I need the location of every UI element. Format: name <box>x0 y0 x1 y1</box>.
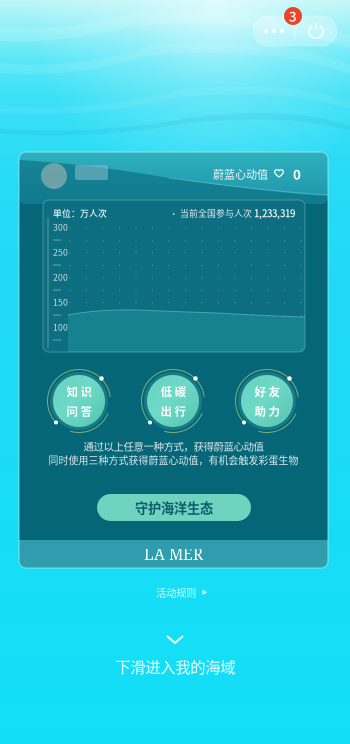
staticText: 好 <box>254 383 265 399</box>
staticText: 300 <box>53 221 68 233</box>
staticText: 150 <box>53 296 68 308</box>
button[interactable]: More and close <box>253 16 337 46</box>
staticText: 100 <box>53 321 68 333</box>
staticText: 同时使用三种方式获得蔚蓝心动值，有机会触发彩蛋生物 <box>48 453 298 467</box>
staticText: 单位：万人次 <box>53 207 107 219</box>
staticText: 0 <box>293 164 301 184</box>
button[interactable]: 低 <box>138 366 208 436</box>
button[interactable]: 守护海洋生态 <box>97 494 251 521</box>
staticText: 友 <box>268 383 279 399</box>
button[interactable]: 活动规则 <box>142 578 222 607</box>
staticText: LA MER <box>144 544 203 564</box>
staticText: 250 <box>53 246 68 258</box>
staticText: 答 <box>80 402 91 419</box>
staticText: 守护海洋生态 <box>135 498 213 517</box>
button[interactable]: 知 <box>44 366 114 436</box>
staticText: 低 <box>160 383 171 399</box>
staticText: 蔚蓝心动值 <box>213 166 268 182</box>
button[interactable]: 好 <box>232 366 302 436</box>
staticText: 知 <box>66 383 77 399</box>
staticText: 出 <box>160 402 171 419</box>
staticText: • <box>169 206 178 220</box>
staticText: 200 <box>53 271 68 283</box>
staticText: 通过以上任意一种方式，获得蔚蓝心动值 <box>83 438 263 454</box>
staticText: 1,233,319 <box>254 206 295 220</box>
staticText: 问 <box>66 402 77 419</box>
staticText: 力 <box>268 402 279 419</box>
staticText: 当前全国参与人次 <box>178 207 254 219</box>
staticText: 助 <box>254 402 265 419</box>
staticText: 行 <box>174 402 185 419</box>
staticText: 下滑进入我的海域 <box>115 655 235 677</box>
staticText: 3 <box>289 6 297 26</box>
staticText: 活动规则 <box>156 585 196 600</box>
staticText: 碳 <box>174 383 185 399</box>
staticText: 识 <box>80 383 91 399</box>
